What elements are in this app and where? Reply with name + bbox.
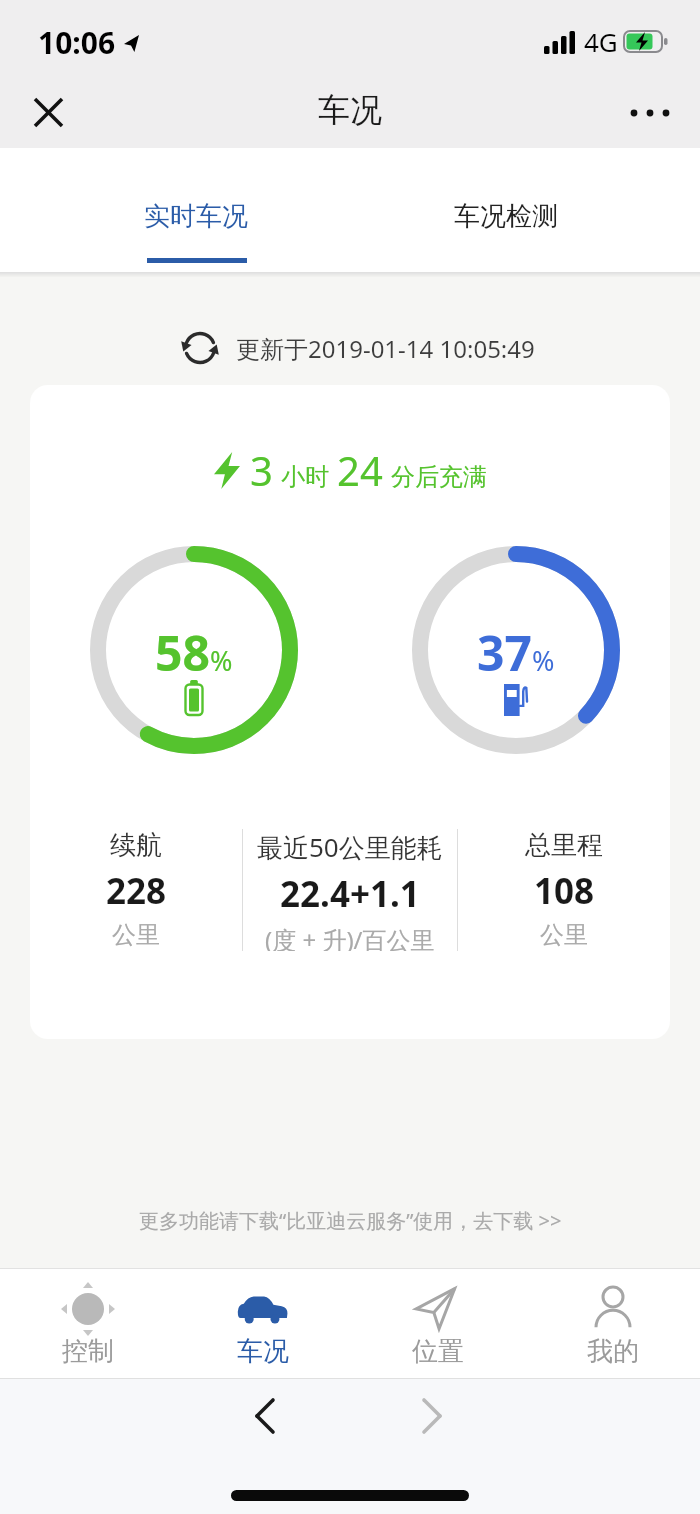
staticText: 37% xyxy=(477,620,555,685)
staticText: 分后充满 xyxy=(391,462,487,492)
staticText: 108 xyxy=(534,867,595,915)
staticText: 3 xyxy=(250,443,273,497)
staticText: 24 xyxy=(337,443,383,497)
button[interactable]: 车况 xyxy=(175,1269,350,1378)
staticText: 22.4+1.1 xyxy=(280,870,420,918)
button[interactable] xyxy=(235,1386,295,1446)
staticText: 我的 xyxy=(587,1335,639,1368)
button[interactable] xyxy=(402,1386,462,1446)
staticText: 小时 xyxy=(281,462,329,492)
staticText: (度 + 升)/百公里 xyxy=(265,923,435,951)
button[interactable]: 控制 xyxy=(0,1269,175,1378)
staticText: 更新于2019-01-14 10:05:49 xyxy=(236,332,535,365)
staticText: 车况 xyxy=(237,1335,289,1368)
staticText: 4G xyxy=(584,24,618,59)
button[interactable]: 实时车况 xyxy=(126,184,266,248)
button[interactable]: 位置 xyxy=(350,1269,525,1378)
staticText: 位置 xyxy=(412,1335,464,1368)
staticText: 公里 xyxy=(112,920,160,950)
staticText: 228 xyxy=(106,867,167,915)
button[interactable] xyxy=(622,96,678,130)
staticText: 公里 xyxy=(540,920,588,950)
staticText: 58% xyxy=(155,620,233,685)
staticText: 控制 xyxy=(62,1335,114,1368)
button[interactable]: 更新于2019-01-14 10:05:49 xyxy=(16,330,700,366)
staticText: 车况检测 xyxy=(454,200,558,233)
button[interactable] xyxy=(26,90,70,134)
staticText: 总里程 xyxy=(525,829,603,862)
button[interactable]: 更多功能请下载“比亚迪云服务”使用，去下载 >> xyxy=(139,1207,562,1234)
staticText: 10:06 xyxy=(38,22,116,63)
button[interactable]: 车况检测 xyxy=(436,184,576,248)
staticText: 续航 xyxy=(110,829,162,862)
staticText: 实时车况 xyxy=(144,200,248,233)
button[interactable]: 我的 xyxy=(525,1269,700,1378)
staticText: 车况 xyxy=(318,90,382,130)
staticText: 最近50公里能耗 xyxy=(257,829,443,865)
